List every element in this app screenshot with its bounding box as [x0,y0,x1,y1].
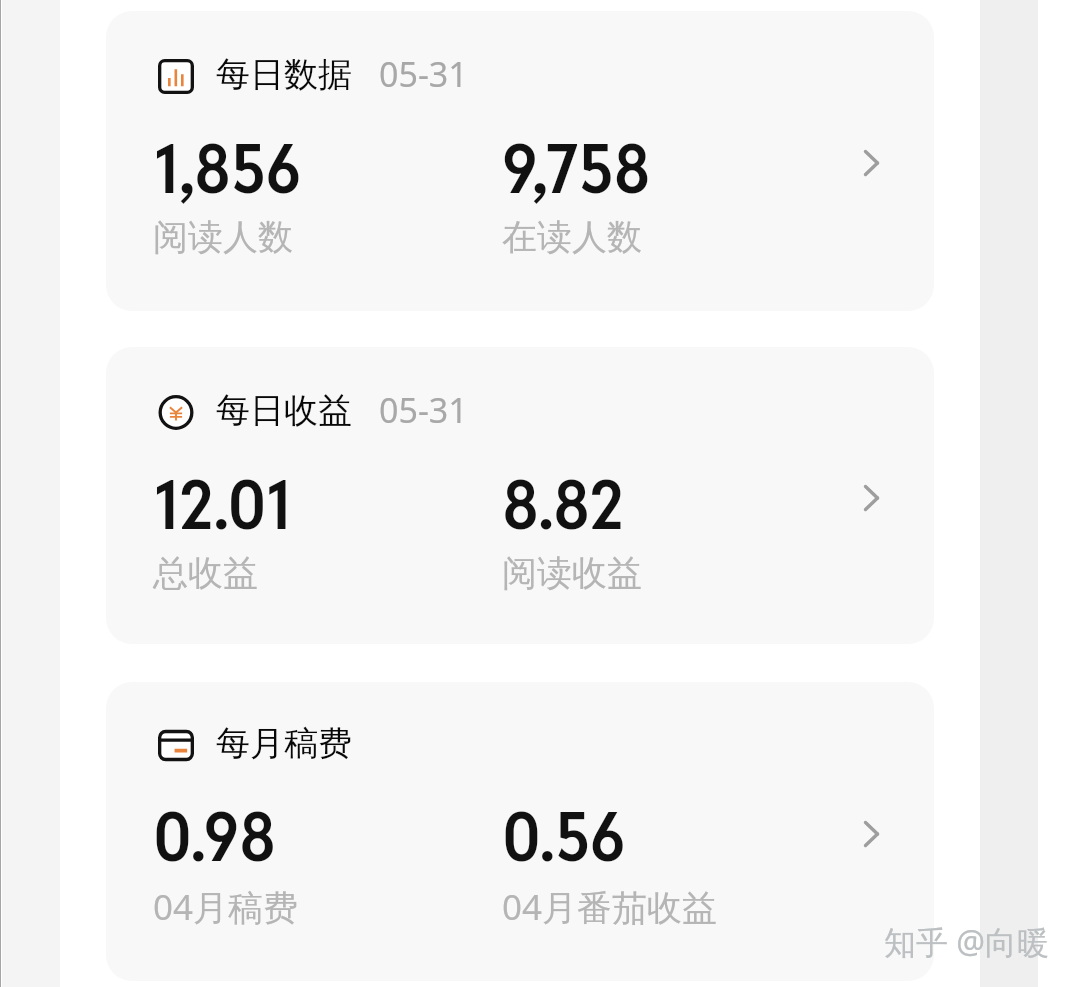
staticText: 12.01 [153,459,292,549]
staticText: 05-31 [379,387,468,433]
staticText: 阅读收益 [502,551,642,595]
staticText: 05-31 [379,51,468,97]
staticText: 1,856 [153,123,302,213]
button[interactable]: 查看详情 [841,468,901,528]
staticText: 9,758 [502,123,651,213]
staticText: 04月稿费 [153,883,299,931]
button[interactable]: 查看详情 [841,133,901,193]
staticText: 04月番茄收益 [502,883,718,931]
staticText: 每日数据 [216,53,352,96]
staticText: 每日收益 [216,389,352,432]
staticText: 8.82 [502,459,625,549]
button[interactable]: 每日数据 [106,11,934,311]
staticText: 知乎 @向暖 [884,920,1050,964]
staticText: 阅读人数 [153,215,293,259]
staticText: 每月稿费 [216,722,352,765]
button[interactable]: 每月稿费 [106,682,934,981]
button[interactable]: 查看详情 [841,804,901,864]
staticText: 0.98 [153,791,277,881]
button[interactable]: 每日收益 [106,347,934,644]
staticText: 总收益 [153,551,258,595]
staticText: 在读人数 [502,215,642,259]
staticText: 0.56 [502,791,626,881]
